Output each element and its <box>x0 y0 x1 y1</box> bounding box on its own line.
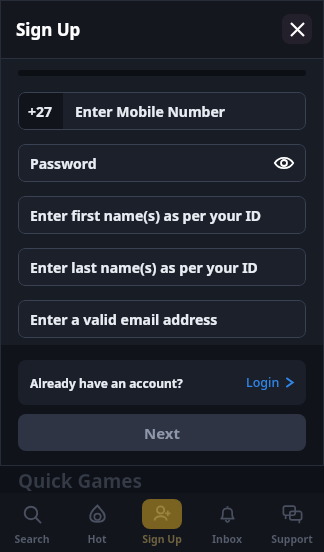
staticText: Support <box>271 532 313 546</box>
staticText: Enter first name(s) as per your ID <box>30 206 262 225</box>
button[interactable]: +27 <box>18 92 306 130</box>
staticText: Next <box>144 423 181 443</box>
staticText: Password <box>30 154 97 173</box>
button[interactable]: Support <box>259 493 324 552</box>
button[interactable]: Enter last name(s) as per your ID <box>18 248 306 286</box>
staticText: Inbox <box>212 532 242 546</box>
button[interactable]: Already have an account? <box>18 360 306 405</box>
staticText: +27 <box>28 102 53 121</box>
button[interactable]: Search <box>0 493 64 552</box>
staticText: Enter last name(s) as per your ID <box>30 258 258 277</box>
staticText: Already have an account? <box>30 375 183 391</box>
button[interactable]: Hot <box>64 493 129 552</box>
staticText: Login <box>246 374 280 391</box>
button[interactable]: Next <box>18 414 306 451</box>
staticText: Enter a valid email address <box>30 310 218 329</box>
button[interactable]: Inbox <box>194 493 259 552</box>
staticText: Sign Up <box>142 532 182 546</box>
staticText: Search <box>14 532 50 546</box>
staticText: Sign Up <box>16 18 81 41</box>
button[interactable]: Show password <box>272 151 296 175</box>
button[interactable]: Enter first name(s) as per your ID <box>18 196 306 234</box>
button[interactable]: Enter a valid email address <box>18 300 306 338</box>
button[interactable]: Close <box>282 14 312 44</box>
button[interactable]: Sign Up <box>129 493 194 552</box>
staticText: Quick Games <box>18 468 143 494</box>
staticText: Hot <box>87 532 107 546</box>
button[interactable]: Password <box>18 144 306 182</box>
staticText: Enter Mobile Number <box>75 102 226 121</box>
